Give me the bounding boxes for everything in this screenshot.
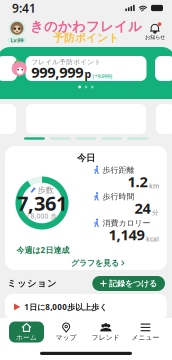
- staticText: 歩数: [38, 185, 54, 195]
- staticText: km: [149, 181, 159, 190]
- staticText: 今週は2日達成: [16, 245, 69, 255]
- button[interactable]: 1日に8,000歩以上歩く: [5, 294, 167, 320]
- staticText: お知らせ: [145, 34, 165, 41]
- staticText: ホーム: [16, 333, 37, 342]
- button[interactable]: プロフィール レベル99: [4, 18, 30, 45]
- staticText: グラフを見る: [71, 258, 119, 268]
- staticText: 記録をつける: [109, 279, 157, 288]
- button[interactable]: フレイル予防ポイント: [25, 56, 146, 81]
- staticText: マップ: [56, 333, 77, 342]
- staticText: 歩行時間: [102, 192, 134, 201]
- staticText: 1日に8,000歩以上歩く: [24, 302, 107, 312]
- staticText: 24: [135, 198, 151, 218]
- staticText: 今日: [77, 152, 95, 164]
- button[interactable]: グラフを見る: [5, 257, 167, 269]
- button[interactable]: マップ: [49, 321, 84, 342]
- staticText: 9:41: [12, 0, 36, 16]
- button[interactable]: メニュー: [128, 321, 163, 342]
- staticText: 1,149: [109, 225, 145, 244]
- staticText: kcal: [146, 234, 159, 243]
- staticText: 歩行距離: [102, 165, 134, 175]
- staticText: メニュー: [131, 333, 159, 342]
- button[interactable]: お知らせ: [142, 18, 168, 45]
- staticText: 999,999: [31, 62, 83, 82]
- staticText: 7,361: [17, 190, 67, 216]
- staticText: フレンド: [92, 333, 120, 342]
- staticText: 1.2: [128, 172, 148, 191]
- button[interactable]: フレンド: [88, 321, 123, 342]
- staticText: 分: [152, 208, 159, 217]
- staticText: フレイル予防ポイント: [31, 58, 101, 66]
- button[interactable]: ホーム: [9, 321, 44, 342]
- staticText: (+9,999): [93, 73, 113, 80]
- staticText: 消費カロリー: [102, 218, 150, 228]
- staticText: p: [84, 67, 91, 81]
- staticText: 予防ポイント: [53, 31, 119, 44]
- staticText: Lv.99: [10, 37, 23, 44]
- staticText: / 8,000 歩: [26, 212, 57, 220]
- staticText: ミッション: [7, 278, 57, 289]
- staticText: きのかわフレイル: [30, 18, 142, 35]
- button[interactable]: 記録をつける: [92, 276, 165, 291]
